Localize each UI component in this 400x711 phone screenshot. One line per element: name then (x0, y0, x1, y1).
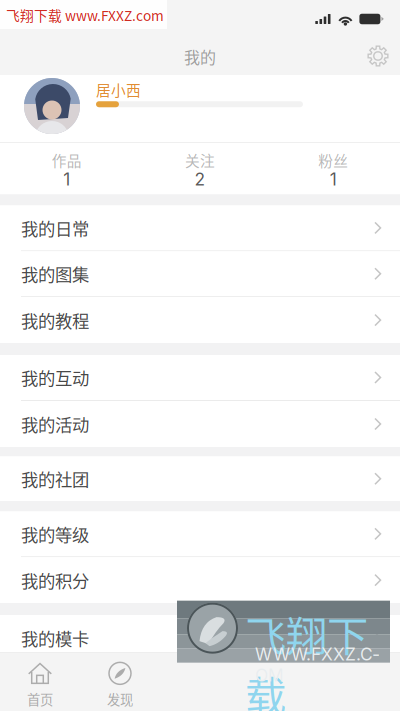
staticText: 发现 (107, 689, 133, 709)
staticText: 粉丝 (318, 149, 348, 171)
staticText: 飞翔下载 (245, 604, 368, 711)
staticText: 作品 (52, 149, 82, 171)
staticText: 1 (63, 169, 70, 190)
button[interactable]: 我的模卡 (0, 615, 400, 661)
staticText: 我的日常 (21, 215, 89, 240)
staticText: 2 (194, 169, 205, 190)
staticText: 1 (330, 169, 337, 190)
staticText: 我的模卡 (21, 625, 89, 650)
staticText: 我的教程 (21, 307, 89, 333)
staticText: 我的等级 (21, 521, 89, 546)
button[interactable]: Settings (356, 34, 400, 78)
staticText: 我的社团 (21, 466, 89, 491)
staticText: 居小西 (96, 79, 141, 100)
staticText: 我的 (184, 45, 216, 68)
staticText: 我的互动 (21, 365, 89, 390)
button[interactable]: 发现 (80, 653, 160, 711)
button[interactable]: 我的日常 (0, 205, 400, 251)
button[interactable]: 作品 (0, 143, 133, 194)
staticText: 关注 (185, 149, 215, 171)
button[interactable]: 居小西 (0, 75, 400, 142)
staticText: 我的积分 (21, 568, 89, 593)
button[interactable]: 我的互动 (0, 355, 400, 401)
button[interactable]: 我的图集 (0, 251, 400, 297)
staticText: 我的活动 (21, 411, 89, 436)
button[interactable]: 我的教程 (0, 297, 400, 343)
button[interactable]: 我的社团 (0, 456, 400, 501)
button[interactable]: 关注 (133, 143, 267, 194)
staticText: 我的图集 (21, 261, 89, 286)
staticText: WWW.FXXZ.COM (255, 644, 379, 685)
button[interactable]: 粉丝 (267, 143, 400, 194)
button[interactable]: 我的活动 (0, 401, 400, 447)
button[interactable]: 我的等级 (0, 511, 400, 557)
button[interactable]: 我的积分 (0, 557, 400, 603)
button[interactable]: 首页 (0, 653, 80, 711)
staticText: 首页 (27, 689, 53, 709)
staticText: 飞翔下载 www.FXXZ.com (6, 5, 164, 25)
